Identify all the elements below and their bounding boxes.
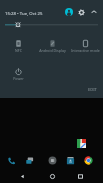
button[interactable]: Home xyxy=(45,169,59,183)
button[interactable]: EDIT xyxy=(84,85,100,94)
button[interactable]: User xyxy=(63,6,75,18)
button[interactable]: Power xyxy=(1,68,35,88)
button[interactable]: All apps xyxy=(46,154,58,166)
button[interactable]: Back xyxy=(15,169,29,183)
staticText: Interactive mode xyxy=(71,48,100,53)
button[interactable]: Settings xyxy=(75,6,87,18)
button[interactable]: Android Display xyxy=(35,40,69,60)
button[interactable]: Phone xyxy=(5,154,17,166)
button[interactable]: Maps xyxy=(77,139,86,148)
staticText: Power xyxy=(13,76,24,81)
button[interactable]: Recents xyxy=(73,169,87,183)
button[interactable]: NFC xyxy=(1,40,35,60)
button[interactable]: 15:28 • Tue, Oct 25 xyxy=(5,8,43,17)
staticText: 15:28 • Tue, Oct 25 xyxy=(5,10,43,16)
staticText: NFC xyxy=(15,48,22,53)
button[interactable]: Play Store xyxy=(64,154,76,166)
staticText: Android Display xyxy=(39,48,66,53)
button[interactable]: Chrome xyxy=(82,154,94,166)
button[interactable]: Messages xyxy=(23,154,35,166)
button[interactable]: Collapse xyxy=(88,6,100,18)
button[interactable]: Interactive mode xyxy=(68,40,102,60)
staticText: EDIT xyxy=(88,87,97,92)
button[interactable]: Brightness xyxy=(0,18,103,31)
